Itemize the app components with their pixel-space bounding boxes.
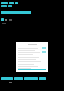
button[interactable] — [1, 2, 64, 4]
button[interactable] — [1, 77, 64, 80]
button[interactable]: Open item — [1, 18, 64, 21]
button[interactable] — [16, 42, 48, 72]
